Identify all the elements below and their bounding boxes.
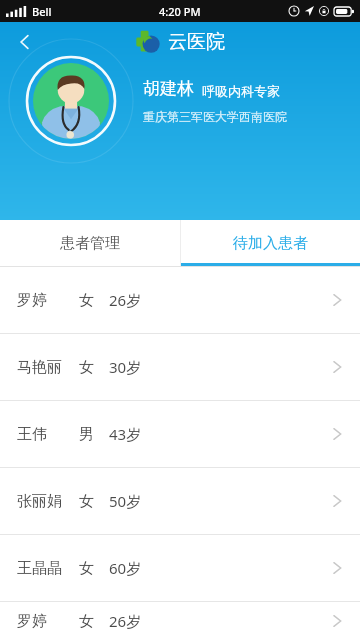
- staticText: 女: [79, 492, 94, 511]
- staticText: 女: [79, 559, 94, 578]
- staticText: 26岁: [109, 611, 142, 631]
- button[interactable]: 张丽娟: [0, 468, 360, 534]
- staticText: 43岁: [109, 424, 142, 444]
- staticText: 女: [79, 358, 94, 377]
- button[interactable]: 马艳丽: [0, 334, 360, 400]
- staticText: 26岁: [109, 290, 142, 310]
- staticText: 罗婷: [17, 612, 47, 631]
- staticText: 胡建林: [143, 78, 194, 99]
- staticText: Bell: [32, 4, 52, 19]
- staticText: 呼吸内科专家: [202, 83, 280, 99]
- staticText: 张丽娟: [17, 492, 62, 511]
- staticText: 罗婷: [17, 291, 47, 310]
- staticText: 患者管理: [60, 234, 120, 253]
- button[interactable]: 患者管理: [0, 220, 180, 266]
- button[interactable]: 罗婷: [0, 602, 360, 640]
- staticText: 待加入患者: [233, 234, 308, 253]
- staticText: 50岁: [109, 491, 142, 511]
- staticText: 女: [79, 612, 94, 631]
- staticText: 重庆第三军医大学西南医院: [143, 109, 287, 124]
- staticText: 云医院: [168, 30, 225, 54]
- staticText: 男: [79, 425, 94, 444]
- button[interactable]: 待加入患者: [180, 220, 360, 266]
- staticText: 女: [79, 291, 94, 310]
- staticText: 马艳丽: [17, 358, 62, 377]
- button[interactable]: 罗婷: [0, 267, 360, 333]
- staticText: 王晶晶: [17, 559, 62, 578]
- staticText: 60岁: [109, 558, 142, 578]
- staticText: 30岁: [109, 357, 142, 377]
- staticText: 4:20 PM: [159, 4, 201, 19]
- staticText: 王伟: [17, 425, 47, 444]
- button[interactable]: Back: [8, 25, 42, 59]
- button[interactable]: 王伟: [0, 401, 360, 467]
- button[interactable]: 王晶晶: [0, 535, 360, 601]
